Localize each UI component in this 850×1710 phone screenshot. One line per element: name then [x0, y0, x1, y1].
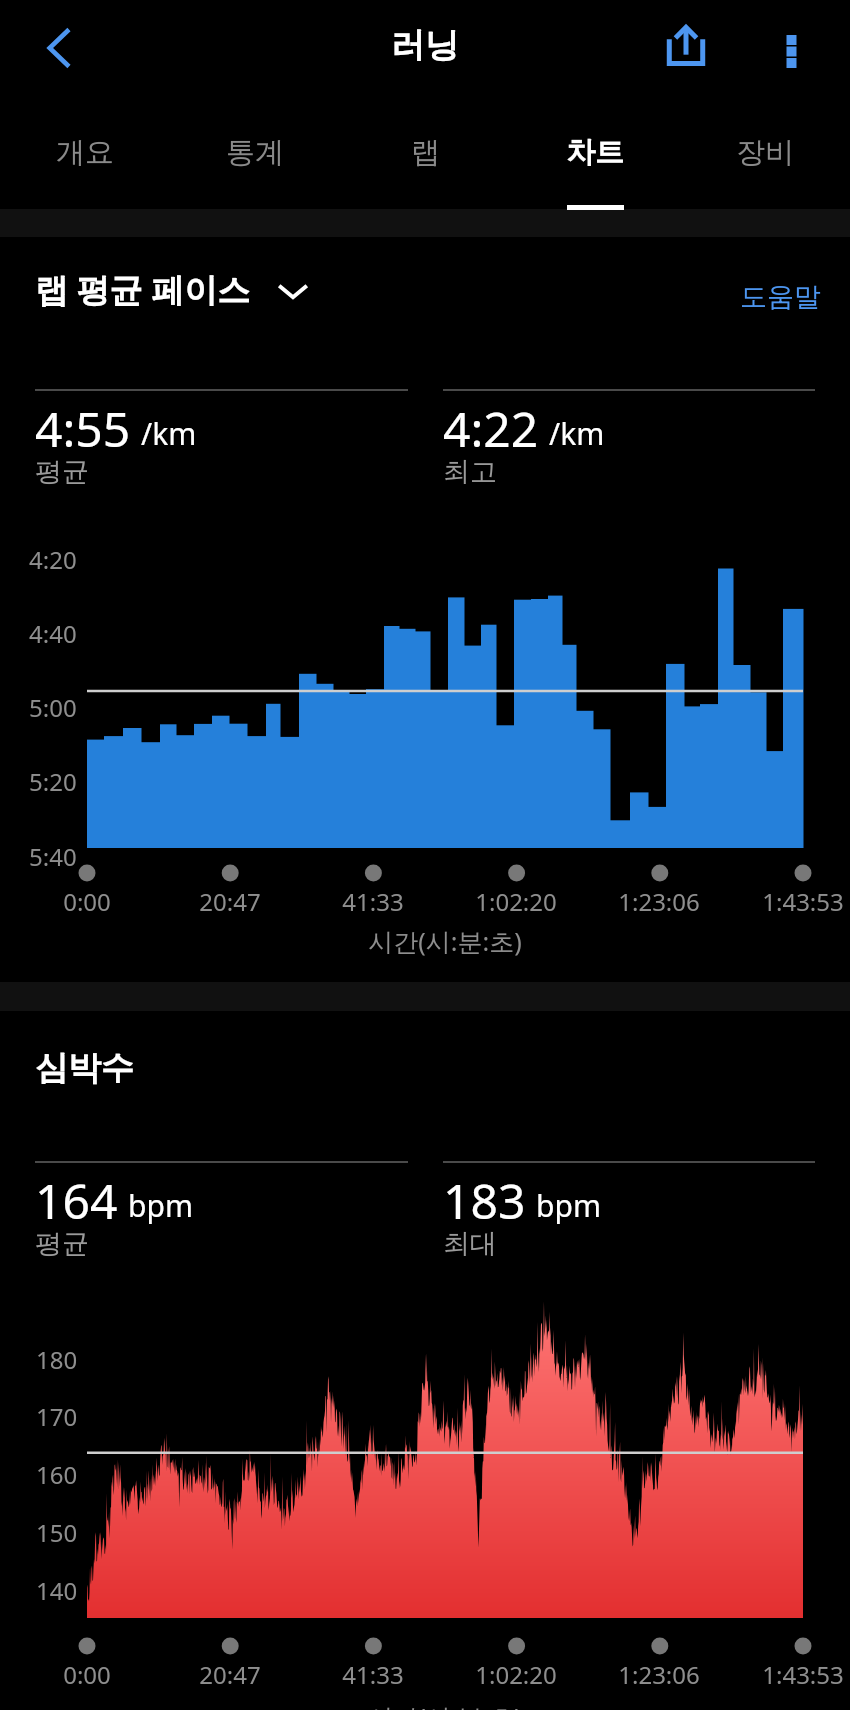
button[interactable]: 랩 [340, 104, 510, 209]
button[interactable]: Share [646, 5, 726, 85]
staticText: 0:00 [0, 885, 237, 918]
staticText: 160 [36, 1458, 78, 1491]
staticText: 평균 [35, 455, 89, 489]
staticText: 1:23:06 [509, 885, 809, 918]
staticText: /km [549, 413, 605, 454]
button[interactable]: Back [25, 12, 97, 84]
button[interactable]: More options [751, 11, 831, 91]
staticText: 1:02:20 [366, 885, 666, 918]
staticText: 차트 [566, 134, 624, 171]
staticText: bpm [128, 1185, 193, 1226]
button[interactable]: 차트 [510, 104, 680, 209]
staticText: 41:33 [223, 885, 523, 918]
staticText: /km [141, 413, 197, 454]
button[interactable]: 통계 [170, 104, 340, 209]
button[interactable]: 랩 평균 페이스 [35, 267, 308, 312]
staticText: 183 [443, 1168, 526, 1233]
staticText: 5:20 [29, 765, 77, 798]
staticText: 20:47 [80, 885, 380, 918]
staticText: 최대 [443, 1227, 497, 1261]
staticText: 1:23:06 [509, 1658, 809, 1691]
staticText: 140 [36, 1574, 78, 1607]
staticText: 랩 [411, 134, 440, 171]
staticText: 평균 [35, 1227, 89, 1261]
staticText: 164 [35, 1168, 118, 1233]
staticText: 시간(시:분:초) [295, 924, 595, 958]
staticText: 장비 [736, 134, 794, 171]
staticText: 5:00 [29, 691, 77, 724]
staticText: 개요 [56, 134, 114, 171]
button[interactable]: 개요 [0, 104, 170, 209]
staticText: 4:55 [35, 396, 131, 461]
staticText: 180 [36, 1343, 78, 1376]
button[interactable]: 도움말 [740, 280, 821, 314]
button[interactable]: 장비 [680, 104, 850, 209]
staticText: 랩 평균 페이스 [35, 267, 251, 312]
staticText: 1:02:20 [366, 1658, 666, 1691]
staticText: 통계 [226, 134, 284, 171]
staticText: 4:40 [29, 617, 77, 650]
staticText: 4:22 [443, 396, 539, 461]
staticText: 170 [36, 1400, 78, 1433]
staticText: 150 [36, 1516, 78, 1549]
staticText: 심박수 [35, 1047, 134, 1089]
staticText: 도움말 [740, 280, 821, 314]
staticText: 4:20 [29, 543, 77, 576]
staticText: 1:43:53 [653, 885, 850, 918]
staticText: 최고 [443, 455, 497, 489]
staticText: bpm [536, 1185, 601, 1226]
staticText: 41:33 [223, 1658, 523, 1691]
staticText: 5:40 [29, 840, 77, 873]
staticText: 1:43:53 [653, 1658, 850, 1691]
staticText: 러닝 [391, 24, 459, 67]
staticText: 시간(시:분:초) [295, 1700, 595, 1710]
staticText: 20:47 [80, 1658, 380, 1691]
staticText: 0:00 [0, 1658, 237, 1691]
